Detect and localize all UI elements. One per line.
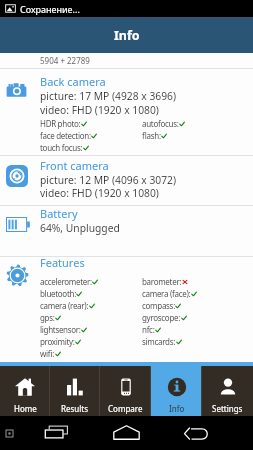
staticText: proximity: (40, 336, 75, 347)
button[interactable]: Home (113, 425, 140, 440)
button[interactable]: Recents (44, 425, 70, 439)
staticText: touch focus: (40, 142, 83, 153)
button[interactable]: Info (151, 366, 202, 416)
button[interactable]: Back (184, 427, 209, 441)
button[interactable]: Settings (202, 366, 253, 416)
staticText: nfc: (142, 324, 155, 335)
staticText: video: FHD (1920 x 1080) (40, 103, 159, 117)
staticText: video: FHD (1920 x 1080) (40, 186, 159, 200)
staticText: Settings (212, 403, 243, 414)
staticText: accelerometer: (40, 276, 92, 287)
button[interactable]: Compare (100, 366, 151, 416)
staticText: lightsensor: (40, 324, 81, 335)
staticText: bluetooth: (40, 288, 76, 299)
staticText: picture: 12 MP (4096 x 3072) (40, 173, 177, 187)
staticText: camera (rear): (40, 300, 89, 311)
staticText: gps: (40, 312, 55, 323)
button[interactable]: Home (0, 366, 50, 416)
staticText: 64%, Unplugged (40, 221, 120, 235)
staticText: Back camera (40, 74, 106, 89)
staticText: Сохранение... (20, 3, 80, 15)
staticText: gyroscope: (142, 312, 181, 323)
button[interactable]: Results (50, 366, 100, 416)
staticText: picture: 17 MP (4928 x 3696) (40, 89, 177, 103)
staticText: HDR photo: (40, 118, 81, 129)
staticText: Info (169, 403, 185, 414)
staticText: 5904 + 22789 (40, 55, 90, 66)
staticText: camera (face): (142, 288, 191, 299)
staticText: Front camera (40, 158, 109, 173)
staticText: Results (61, 403, 89, 414)
staticText: wifi: (40, 348, 55, 359)
staticText: Features (40, 255, 85, 270)
staticText: flash: (142, 130, 161, 141)
staticText: Battery (40, 206, 78, 221)
staticText: face detection: (40, 130, 91, 141)
staticText: autofocus: (142, 118, 179, 129)
staticText: compass: (142, 300, 175, 311)
staticText: Home (14, 403, 37, 414)
staticText: Compare (108, 403, 143, 414)
staticText: barometer: (142, 276, 182, 287)
staticText: Info (114, 27, 140, 44)
staticText: simcards: (142, 336, 176, 347)
